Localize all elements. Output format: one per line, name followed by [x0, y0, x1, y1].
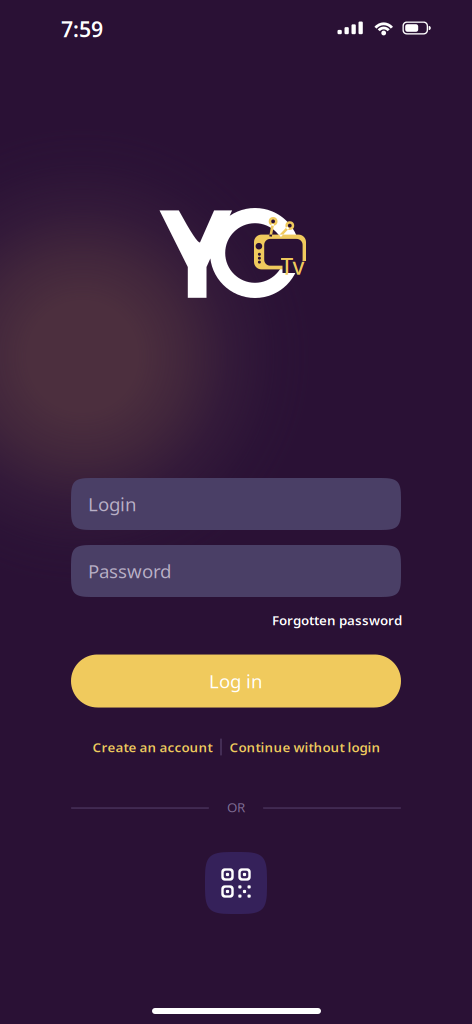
button[interactable]: Password	[71, 545, 401, 597]
staticText: Password	[88, 559, 171, 583]
staticText: Login	[88, 492, 137, 516]
staticText: Tv	[280, 251, 304, 281]
button[interactable]: Log in	[71, 654, 401, 707]
staticText: Create an account	[92, 738, 212, 756]
button[interactable]: Login	[71, 478, 401, 530]
staticText: Forgotten password	[272, 611, 402, 629]
staticText: OR	[227, 798, 245, 816]
staticText: 7:59	[61, 15, 103, 43]
button[interactable]: Continue without login	[230, 734, 381, 760]
button[interactable]: Forgotten password	[270, 607, 404, 633]
button[interactable]: Create an account	[92, 734, 212, 760]
staticText: Log in	[209, 669, 263, 693]
staticText: Continue without login	[230, 738, 381, 756]
button[interactable]: Sign in with QR code	[205, 852, 267, 914]
